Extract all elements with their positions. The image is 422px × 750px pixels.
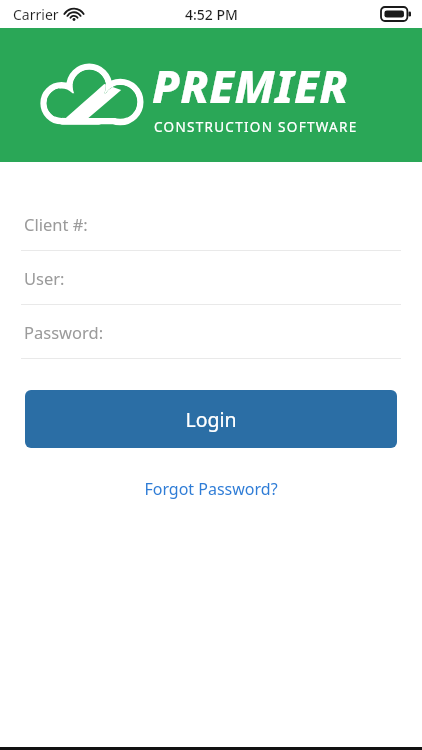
button[interactable]: Forgot Password? <box>0 478 422 500</box>
staticText: Client #: <box>24 213 88 235</box>
staticText: CONSTRUCTION SOFTWARE <box>154 118 358 136</box>
staticText: PREMIER <box>152 55 349 116</box>
button[interactable]: User: <box>0 251 422 305</box>
button[interactable]: Client #: <box>0 197 422 251</box>
staticText: Carrier <box>13 5 59 24</box>
button[interactable]: Password: <box>0 305 422 359</box>
staticText: Password: <box>24 321 104 343</box>
button[interactable]: Login <box>25 390 397 448</box>
staticText: Login <box>185 406 237 433</box>
staticText: Forgot Password? <box>144 478 278 500</box>
staticText: 4:52 PM <box>185 5 238 24</box>
staticText: User: <box>24 267 65 289</box>
